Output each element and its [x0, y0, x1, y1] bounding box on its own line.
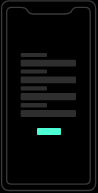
button[interactable]: Primary action button [37, 128, 61, 135]
